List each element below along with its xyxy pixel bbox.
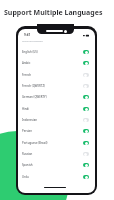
staticText: French [22,73,32,77]
button[interactable]: Hindi [18,103,95,114]
button[interactable]: English (US) [18,46,95,57]
button[interactable]: Persian toggle [83,129,89,133]
button[interactable]: Spanish [18,159,95,170]
button[interactable]: Arabic toggle [83,61,89,65]
button[interactable]: English (US) toggle [83,50,89,54]
button[interactable]: Hindi toggle [83,107,89,111]
button[interactable]: Urdu [18,171,95,182]
button[interactable]: French toggle [83,73,89,77]
staticText: Urdu [22,175,29,179]
button[interactable]: Portuguese (Brazil) toggle [83,141,89,145]
button[interactable]: Indonesian toggle [83,118,89,122]
button[interactable]: Russian toggle [83,152,89,156]
staticText: German (QWERTY) [22,95,47,99]
staticText: Russian [22,152,33,156]
staticText: Arabic [22,61,31,65]
button[interactable]: Russian [18,148,95,159]
button[interactable]: German (QWERTY) toggle [83,95,89,99]
button[interactable]: Urdu toggle [83,175,89,179]
staticText: Hindi [22,107,30,111]
staticText: English (US) [22,50,38,54]
button[interactable]: Spanish toggle [83,163,89,167]
button[interactable]: Persian [18,125,95,136]
button[interactable]: Arabic [18,57,95,68]
button[interactable]: Portuguese (Brazil) [18,137,95,148]
staticText: ACTIVE INPUT METHODS [22,40,43,42]
staticText: Persian [22,129,32,133]
staticText: 9:41 [24,33,31,37]
staticText: Spanish [22,163,33,167]
staticText: Portuguese (Brazil) [22,141,48,145]
button[interactable]: French (QWERTZ) toggle [83,84,89,88]
button[interactable]: Indonesian [18,114,95,125]
button[interactable]: French (QWERTZ) [18,80,95,91]
staticText: Indonesian [22,118,38,122]
button[interactable]: French [18,69,95,80]
staticText: Support Multiple Languages [4,8,103,18]
staticText: French (QWERTZ) [22,84,45,88]
button[interactable]: German (QWERTY) [18,91,95,102]
